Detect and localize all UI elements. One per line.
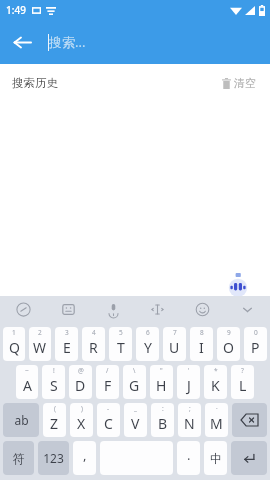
- button[interactable]: 4: [82, 327, 105, 361]
- staticText: C: [104, 414, 113, 433]
- staticText: P: [251, 338, 260, 357]
- staticText: G: [129, 376, 140, 395]
- staticText: :: [162, 404, 164, 413]
- button[interactable]: 7: [163, 327, 186, 361]
- button[interactable]: 中: [204, 441, 227, 475]
- staticText: K: [211, 376, 220, 395]
- button[interactable]: !: [42, 365, 65, 399]
- staticText: 1: [12, 328, 16, 337]
- button[interactable]: ~: [16, 365, 38, 399]
- button[interactable]: ·: [205, 403, 228, 437]
- button[interactable]: ;: [178, 403, 201, 437]
- staticText: J: [187, 376, 191, 395]
- staticText: 符: [13, 451, 25, 466]
- button[interactable]: 2: [29, 327, 51, 361]
- staticText: \: [133, 366, 136, 375]
- button[interactable]: \: [123, 365, 146, 399]
- staticText: 3: [65, 328, 69, 337]
- staticText: /: [106, 366, 109, 375]
- staticText: *: [214, 366, 218, 375]
- staticText: 2: [38, 328, 42, 337]
- staticText: A: [23, 376, 32, 395]
- button[interactable]: Delete: [232, 403, 267, 437]
- button[interactable]: 9: [217, 327, 240, 361]
- button[interactable]: (: [43, 403, 66, 437]
- staticText: ?: [241, 366, 244, 375]
- staticText: O: [223, 338, 234, 357]
- button[interactable]: _: [124, 403, 147, 437]
- button[interactable]: Enter: [231, 441, 267, 475]
- staticText: Z: [50, 414, 59, 433]
- staticText: Y: [144, 338, 152, 357]
- staticText: E: [63, 338, 71, 357]
- staticText: ab: [14, 412, 29, 428]
- staticText: R: [89, 338, 98, 357]
- staticText: -: [107, 404, 110, 413]
- staticText: 搜索...: [49, 33, 86, 51]
- staticText: ;: [189, 404, 191, 413]
- staticText: B: [158, 414, 168, 433]
- staticText: D: [75, 376, 86, 395]
- staticText: X: [77, 414, 86, 433]
- button[interactable]: 清空: [220, 72, 258, 94]
- button[interactable]: ?: [231, 365, 254, 399]
- staticText: 9: [227, 328, 231, 337]
- button[interactable]: :: [151, 403, 174, 437]
- button[interactable]: 8: [190, 327, 213, 361]
- button[interactable]: Voice input: [100, 296, 126, 322]
- button[interactable]: 6: [136, 327, 159, 361]
- staticText: L: [239, 376, 247, 395]
- staticText: M: [210, 414, 223, 433]
- button[interactable]: 1: [3, 327, 25, 361]
- staticText: 清空: [234, 76, 256, 90]
- staticText: 8: [200, 328, 204, 337]
- staticText: W: [33, 338, 47, 357]
- button[interactable]: .: [177, 441, 200, 475]
- staticText: _: [134, 404, 137, 413]
- staticText: 7: [173, 328, 177, 337]
- staticText: 0: [254, 328, 258, 337]
- button[interactable]: 符: [3, 441, 34, 475]
- button[interactable]: 123: [38, 441, 69, 475]
- button[interactable]: Move cursor: [144, 296, 170, 322]
- staticText: !: [53, 366, 55, 375]
- button[interactable]: 5: [109, 327, 132, 361]
- button[interactable]: 3: [55, 327, 78, 361]
- button[interactable]: Back: [0, 20, 44, 64]
- staticText: ": [160, 366, 163, 375]
- button[interactable]: ": [150, 365, 173, 399]
- button[interactable]: Keyboard layout: [55, 296, 81, 322]
- button[interactable]: Hide keyboard: [234, 296, 260, 322]
- staticText: I: [199, 338, 204, 357]
- button[interactable]: 0: [244, 327, 267, 361]
- staticText: ): [81, 404, 83, 413]
- staticText: .: [187, 446, 191, 464]
- staticText: 中: [210, 451, 222, 466]
- button[interactable]: ,: [73, 441, 96, 475]
- button[interactable]: ): [70, 403, 93, 437]
- staticText: 1:49: [6, 3, 26, 17]
- button[interactable]: -: [97, 403, 120, 437]
- staticText: N: [184, 414, 195, 433]
- button[interactable]: Emoji: [189, 296, 215, 322]
- staticText: H: [156, 376, 167, 395]
- button[interactable]: Handwriting: [10, 296, 36, 322]
- staticText: @: [78, 366, 84, 375]
- staticText: 6: [146, 328, 150, 337]
- button[interactable]: /: [96, 365, 119, 399]
- staticText: S: [50, 376, 58, 395]
- button[interactable]: 搜索...: [48, 27, 258, 57]
- staticText: 搜索历史: [12, 76, 58, 90]
- staticText: (: [54, 404, 56, 413]
- button[interactable]: ab: [3, 403, 39, 437]
- button[interactable]: *: [204, 365, 227, 399]
- staticText: F: [104, 376, 112, 395]
- staticText: 123: [43, 450, 64, 466]
- staticText: ~: [25, 366, 29, 375]
- staticText: ': [188, 366, 190, 375]
- staticText: ·: [216, 404, 218, 413]
- staticText: V: [131, 414, 140, 433]
- button[interactable]: ': [177, 365, 200, 399]
- button[interactable]: @: [69, 365, 92, 399]
